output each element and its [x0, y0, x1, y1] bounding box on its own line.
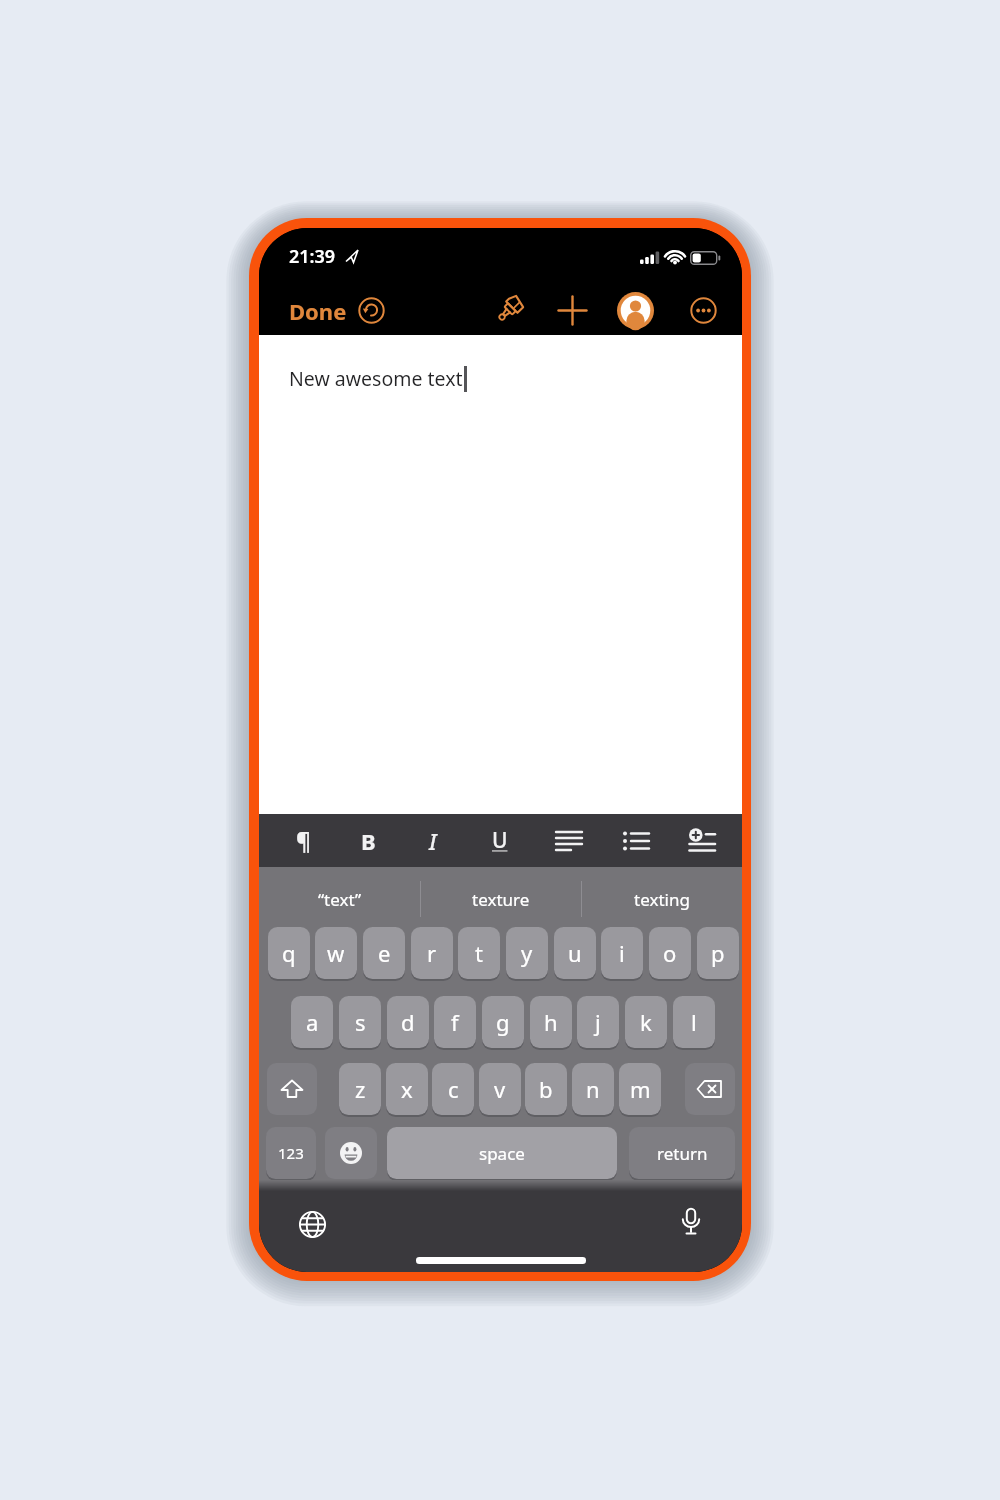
staticText: e — [378, 938, 391, 968]
button[interactable]: b — [525, 1063, 567, 1115]
button[interactable]: ¶ — [283, 814, 323, 867]
button[interactable]: “text” — [259, 881, 420, 917]
staticText: I — [429, 826, 437, 856]
staticText: z — [355, 1074, 366, 1104]
staticText: b — [539, 1074, 553, 1104]
staticText: r — [427, 938, 437, 968]
button[interactable] — [292, 1204, 332, 1244]
button[interactable]: m — [619, 1063, 661, 1115]
button[interactable]: return — [629, 1127, 735, 1179]
staticText: i — [619, 938, 625, 968]
button[interactable]: h — [530, 996, 572, 1048]
button[interactable]: k — [625, 996, 667, 1048]
staticText: y — [521, 938, 533, 968]
staticText: n — [586, 1074, 600, 1104]
button[interactable]: p — [697, 927, 739, 979]
button[interactable]: d — [387, 996, 429, 1048]
staticText: “text” — [318, 888, 362, 911]
staticText: x — [401, 1074, 413, 1104]
button[interactable]: Done — [289, 296, 347, 326]
button[interactable]: texture — [420, 881, 581, 917]
staticText: d — [401, 1007, 415, 1037]
staticText: p — [711, 938, 725, 968]
button[interactable]: y — [506, 927, 548, 979]
button[interactable]: v — [479, 1063, 521, 1115]
button[interactable]: c — [432, 1063, 474, 1115]
button[interactable] — [325, 1127, 377, 1179]
staticText: v — [494, 1074, 506, 1104]
button[interactable]: U — [480, 814, 520, 867]
staticText: l — [691, 1007, 697, 1037]
button[interactable]: l — [673, 996, 715, 1048]
staticText: 21:39 — [289, 244, 336, 269]
button[interactable]: space — [387, 1127, 617, 1179]
button[interactable]: t — [458, 927, 500, 979]
button[interactable]: z — [339, 1063, 381, 1115]
button[interactable]: s — [339, 996, 381, 1048]
staticText: u — [568, 938, 582, 968]
button[interactable]: n — [572, 1063, 614, 1115]
staticText: c — [448, 1074, 459, 1104]
button[interactable]: g — [482, 996, 524, 1048]
staticText: s — [355, 1007, 366, 1037]
button[interactable]: e — [363, 927, 405, 979]
staticText: k — [640, 1007, 652, 1037]
button[interactable] — [556, 294, 589, 327]
staticText: space — [479, 1142, 525, 1165]
button[interactable]: u — [554, 927, 596, 979]
button[interactable] — [267, 1063, 317, 1115]
button[interactable] — [671, 1202, 711, 1242]
staticText: h — [544, 1007, 558, 1037]
staticText: w — [327, 938, 345, 968]
staticText: New awesome text — [289, 365, 463, 392]
button[interactable]: a — [291, 996, 333, 1048]
button[interactable] — [690, 297, 717, 324]
button[interactable] — [358, 297, 385, 324]
button[interactable]: B — [348, 814, 388, 867]
staticText: m — [630, 1074, 651, 1104]
staticText: q — [282, 938, 296, 968]
button[interactable]: I — [413, 814, 453, 867]
staticText: texting — [634, 888, 690, 911]
button[interactable]: f — [434, 996, 476, 1048]
button[interactable]: i — [601, 927, 643, 979]
button[interactable]: x — [386, 1063, 428, 1115]
button[interactable]: texting — [581, 881, 742, 917]
button[interactable] — [489, 290, 529, 330]
staticText: ¶ — [296, 825, 311, 856]
staticText: a — [306, 1007, 319, 1037]
button[interactable]: j — [577, 996, 619, 1048]
staticText: t — [475, 938, 483, 968]
button[interactable]: w — [315, 927, 357, 979]
button[interactable]: 123 — [266, 1127, 316, 1179]
staticText: g — [496, 1007, 510, 1037]
staticText: U — [492, 826, 508, 855]
button[interactable]: o — [649, 927, 691, 979]
button[interactable] — [685, 1063, 735, 1115]
button[interactable] — [549, 814, 589, 867]
staticText: o — [663, 938, 677, 968]
staticText: j — [595, 1007, 601, 1037]
staticText: texture — [472, 888, 530, 911]
staticText: 123 — [278, 1143, 304, 1163]
button[interactable] — [616, 814, 656, 867]
staticText: f — [451, 1007, 459, 1037]
staticText: B — [361, 826, 376, 856]
button[interactable] — [617, 292, 654, 329]
staticText: return — [657, 1142, 708, 1165]
button[interactable]: q — [268, 927, 310, 979]
button[interactable] — [682, 814, 722, 867]
button[interactable]: r — [411, 927, 453, 979]
